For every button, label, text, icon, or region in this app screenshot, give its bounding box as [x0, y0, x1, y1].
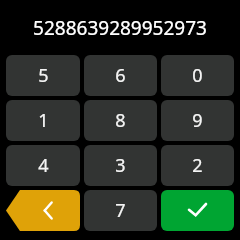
button[interactable]: 7 [84, 190, 157, 231]
staticText: 0 [192, 63, 203, 88]
staticText: 6 [115, 63, 126, 88]
staticText: 5288639289952973 [33, 15, 207, 41]
button[interactable]: 0 [161, 55, 234, 96]
staticText: 1 [38, 108, 49, 133]
staticText: 9 [192, 108, 203, 133]
button[interactable]: 6 [84, 55, 157, 96]
button[interactable]: 5 [6, 55, 80, 96]
staticText: 8 [115, 108, 126, 133]
button[interactable]: Backspace [6, 190, 80, 231]
button[interactable]: Confirm [161, 190, 234, 231]
staticText: 7 [115, 198, 126, 223]
button[interactable]: 3 [84, 145, 157, 186]
button[interactable]: 8 [84, 100, 157, 141]
staticText: 5 [38, 63, 49, 88]
staticText: 2 [192, 153, 203, 178]
button[interactable]: 4 [6, 145, 80, 186]
staticText: 3 [115, 153, 126, 178]
staticText: 4 [38, 153, 49, 178]
button[interactable]: 2 [161, 145, 234, 186]
button[interactable]: 1 [6, 100, 80, 141]
button[interactable]: 9 [161, 100, 234, 141]
